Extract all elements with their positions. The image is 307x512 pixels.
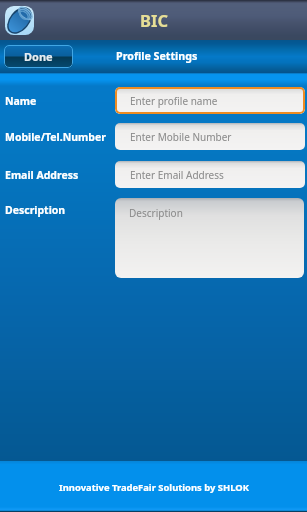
staticText: Enter Mobile Number <box>130 130 232 144</box>
staticText: Done <box>24 49 53 64</box>
staticText: Enter profile name <box>130 94 218 108</box>
staticText: Mobile/Tel.Number <box>5 130 115 144</box>
staticText: Name <box>5 94 115 108</box>
staticText: BIC <box>140 9 168 31</box>
staticText: Enter Email Address <box>130 168 224 182</box>
button[interactable]: Enter Mobile Number <box>115 123 305 150</box>
button[interactable]: Description <box>115 198 304 278</box>
button[interactable]: Enter profile name <box>115 87 305 114</box>
button[interactable]: Done <box>4 45 73 68</box>
staticText: Innovative TradeFair Solutions by SHLOK <box>59 481 249 494</box>
staticText: Email Address <box>5 168 115 182</box>
button[interactable]: App logo <box>5 6 34 35</box>
button[interactable]: Enter Email Address <box>115 161 305 188</box>
staticText: Description <box>129 206 183 220</box>
staticText: Description <box>5 203 115 217</box>
staticText: Profile Settings <box>116 49 198 64</box>
